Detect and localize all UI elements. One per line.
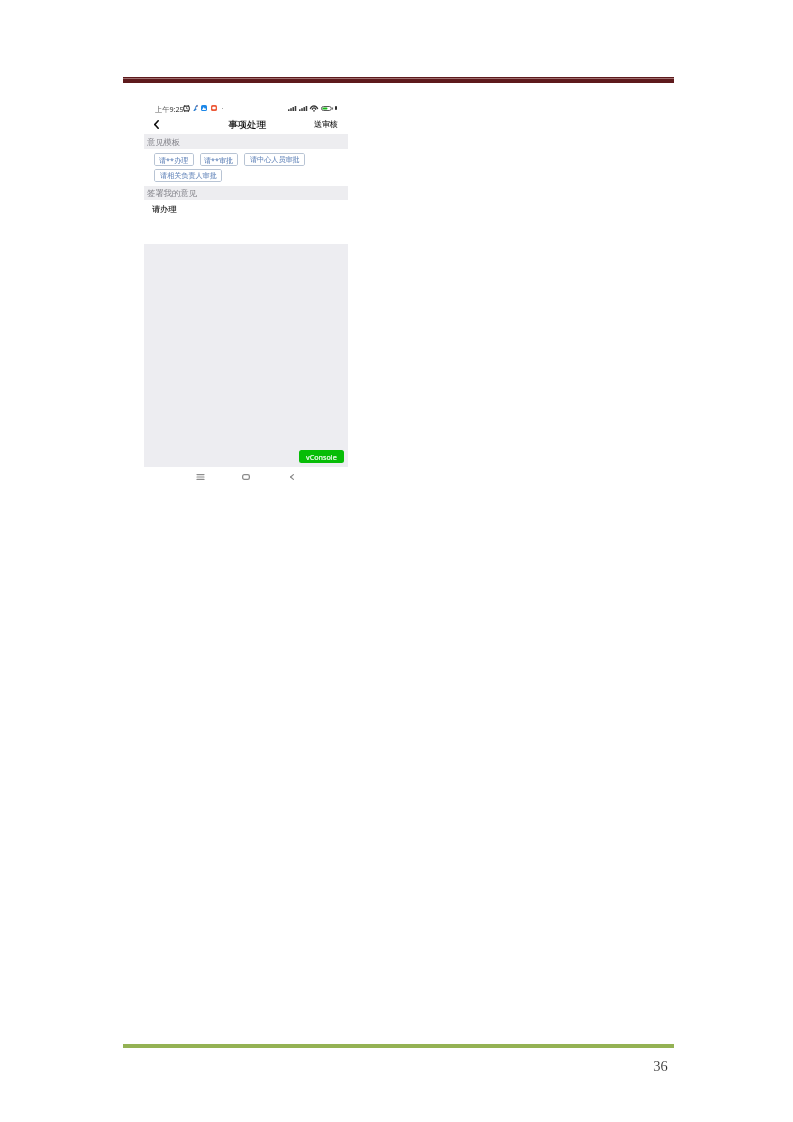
staticText: 请中心人员审批: [250, 155, 300, 164]
staticText: 上午9:25: [155, 104, 184, 114]
staticText: 请相关负责人审批: [160, 171, 217, 180]
button[interactable]: 送审核: [309, 115, 343, 133]
staticText: 事项处理: [228, 119, 266, 131]
button[interactable]: 返回: [283, 468, 301, 486]
button[interactable]: 最近任务: [191, 468, 209, 486]
staticText: 意见模板: [147, 137, 181, 147]
staticText: 36: [640, 1058, 681, 1074]
staticText: 请**办理: [159, 155, 189, 165]
button[interactable]: 请中心人员审批: [244, 153, 305, 166]
staticText: 请**审批: [204, 155, 234, 165]
button[interactable]: 请相关负责人审批: [154, 169, 222, 182]
staticText: 签署我的意见: [147, 188, 197, 198]
button[interactable]: vConsole: [299, 450, 344, 463]
button[interactable]: 返回: [150, 118, 162, 130]
button[interactable]: 请**审批: [200, 153, 238, 166]
staticText: 请办理: [152, 204, 177, 214]
button[interactable]: 主屏幕: [237, 468, 255, 486]
staticText: 送审核: [314, 119, 338, 129]
staticText: vConsole: [306, 452, 337, 462]
button[interactable]: 请**办理: [154, 153, 194, 166]
